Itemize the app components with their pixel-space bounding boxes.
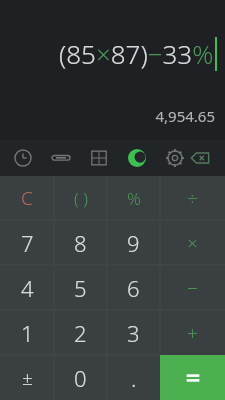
staticText: ± [22, 365, 33, 391]
button[interactable]: 2 [54, 310, 107, 355]
staticText: × [187, 230, 198, 256]
button[interactable]: 8 [54, 220, 107, 265]
staticText: 5 [74, 273, 87, 303]
button[interactable]: Settings [164, 147, 186, 169]
staticText: ( ) [74, 187, 88, 210]
button[interactable]: % [107, 176, 160, 220]
staticText: . [131, 363, 137, 393]
staticText: − [187, 275, 198, 301]
staticText: 6 [127, 273, 140, 303]
button[interactable]: ± [0, 355, 54, 400]
button[interactable]: 9 [107, 220, 160, 265]
button[interactable]: . [107, 355, 160, 400]
button[interactable]: 1 [0, 310, 54, 355]
button[interactable] [160, 355, 225, 400]
button[interactable]: Keypad [50, 147, 72, 169]
staticText: C [21, 185, 33, 211]
staticText: 7 [21, 228, 34, 258]
button[interactable]: 3 [107, 310, 160, 355]
staticText: 8 [74, 228, 87, 258]
button[interactable]: 6 [107, 265, 160, 310]
button[interactable]: − [160, 265, 225, 310]
staticText: 2 [74, 318, 87, 348]
staticText: 0 [74, 363, 87, 393]
button[interactable]: + [160, 310, 225, 355]
staticText: 1 [21, 318, 34, 348]
staticText: 4,954.65 [155, 106, 215, 126]
button[interactable]: 7 [0, 220, 54, 265]
button[interactable]: 0 [54, 355, 107, 400]
staticText: (85×87)−33% [59, 36, 214, 71]
button[interactable]: C [0, 176, 54, 220]
button[interactable]: History [12, 147, 34, 169]
button[interactable]: 4 [0, 265, 54, 310]
staticText: + [187, 320, 198, 346]
button[interactable]: Unit converter [88, 147, 110, 169]
staticText: % [127, 187, 141, 210]
button[interactable]: Backspace [189, 147, 211, 169]
button[interactable]: ( ) [54, 176, 107, 220]
button[interactable]: ÷ [160, 176, 225, 220]
staticText: 3 [127, 318, 140, 348]
staticText: 4 [21, 273, 34, 303]
button[interactable]: Theme [126, 147, 148, 169]
button[interactable]: × [160, 220, 225, 265]
button[interactable]: 5 [54, 265, 107, 310]
staticText: 9 [127, 228, 140, 258]
staticText: ÷ [187, 185, 198, 211]
